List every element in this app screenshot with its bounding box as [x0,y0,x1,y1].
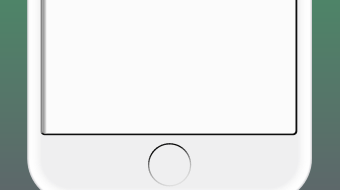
button[interactable]: Home [0,0,340,190]
